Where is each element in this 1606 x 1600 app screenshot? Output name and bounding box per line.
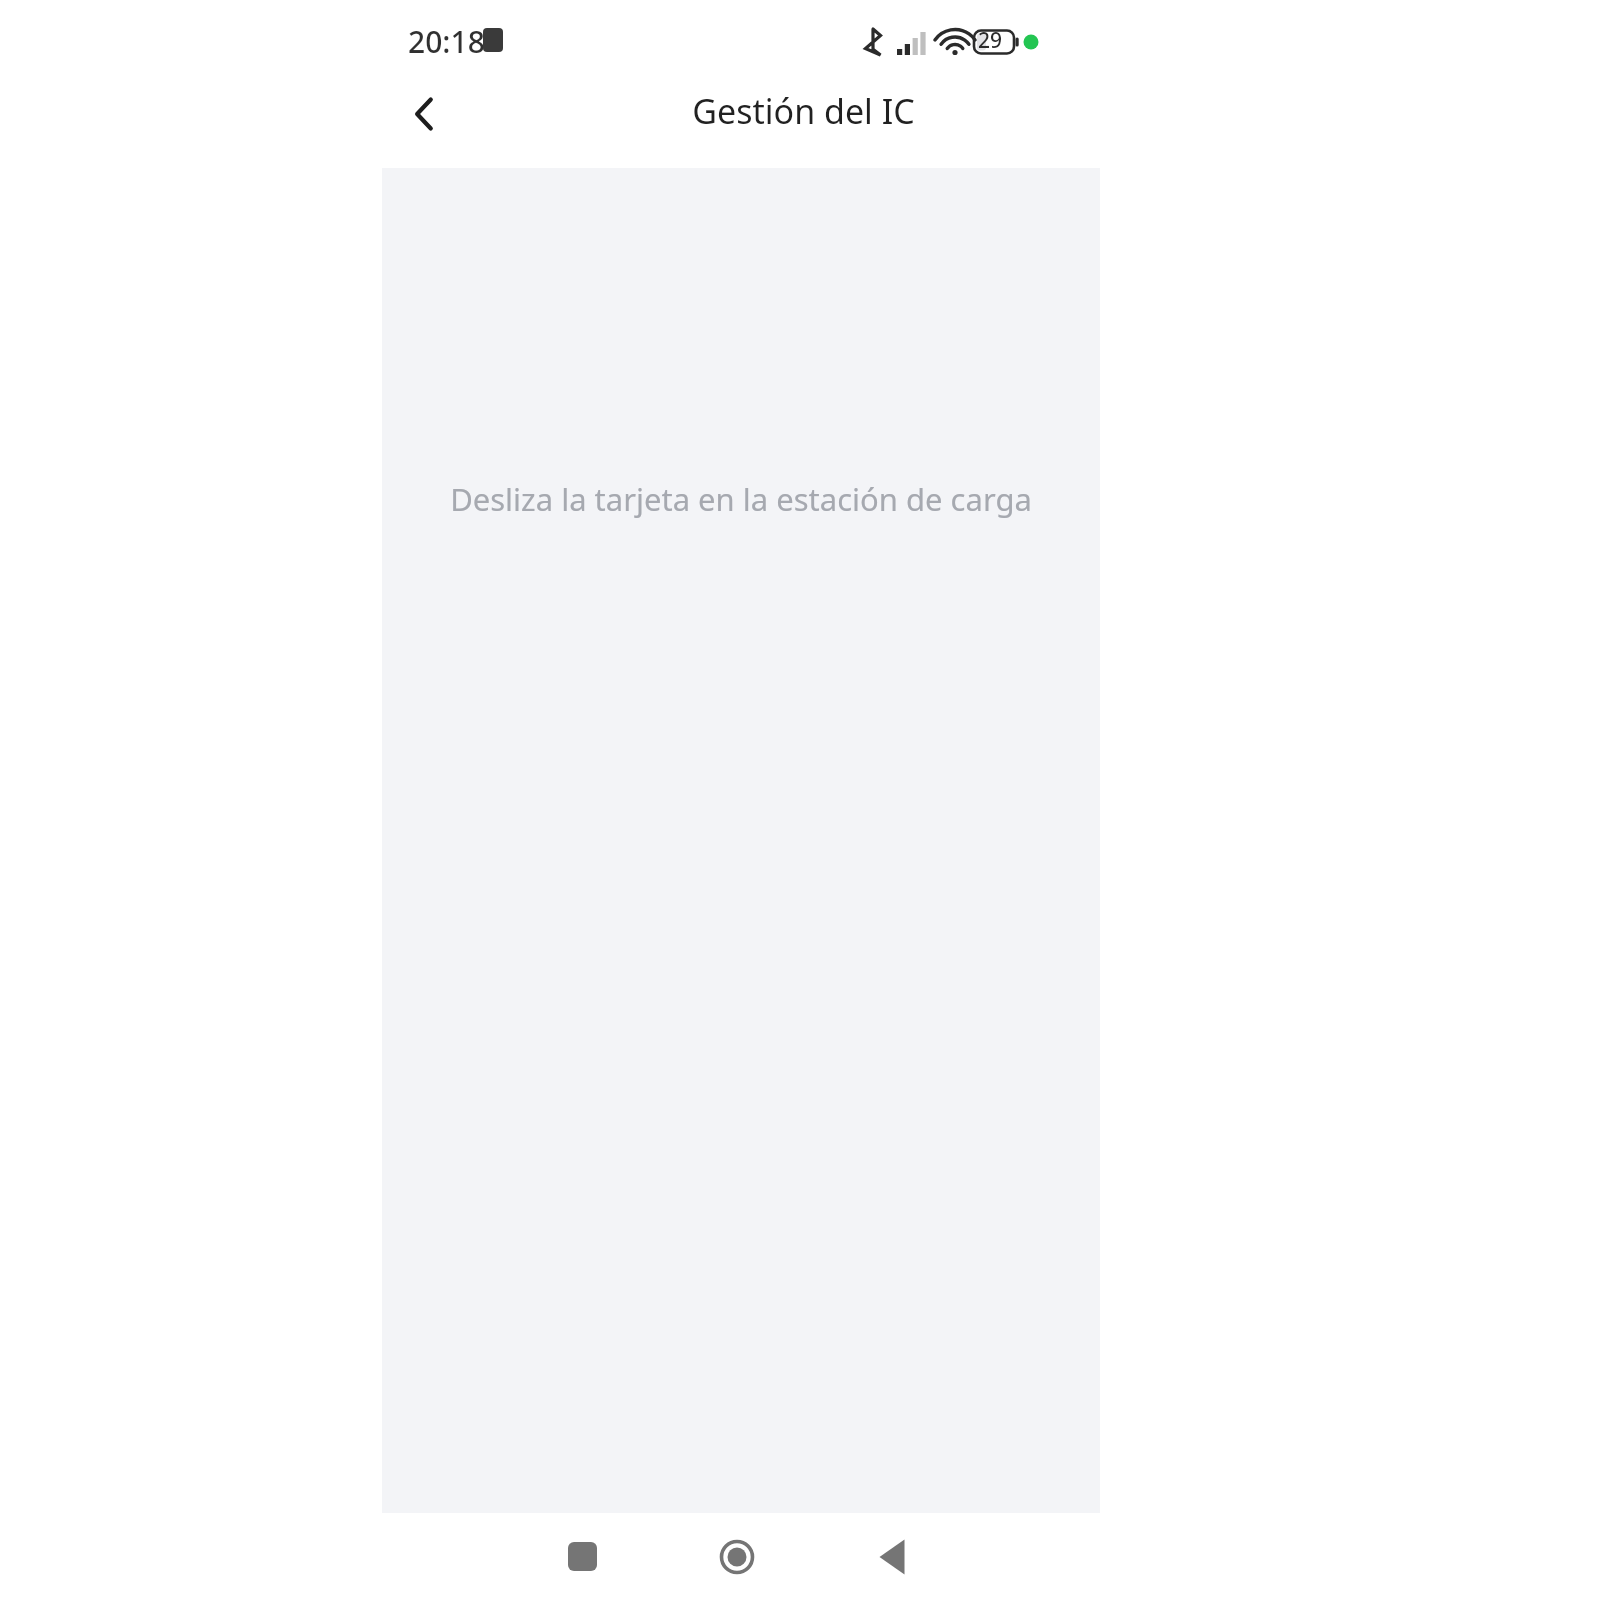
staticText: Gestión del IC — [692, 88, 915, 134]
button[interactable]: Back — [844, 1509, 940, 1600]
button[interactable]: Home — [689, 1509, 785, 1600]
button[interactable]: Recent apps — [534, 1508, 630, 1600]
button[interactable]: Back — [377, 66, 473, 162]
staticText: 20:18 — [408, 21, 485, 62]
staticText: Desliza la tarjeta en la estación de car… — [450, 478, 1032, 520]
staticText: 29 — [978, 26, 1003, 55]
